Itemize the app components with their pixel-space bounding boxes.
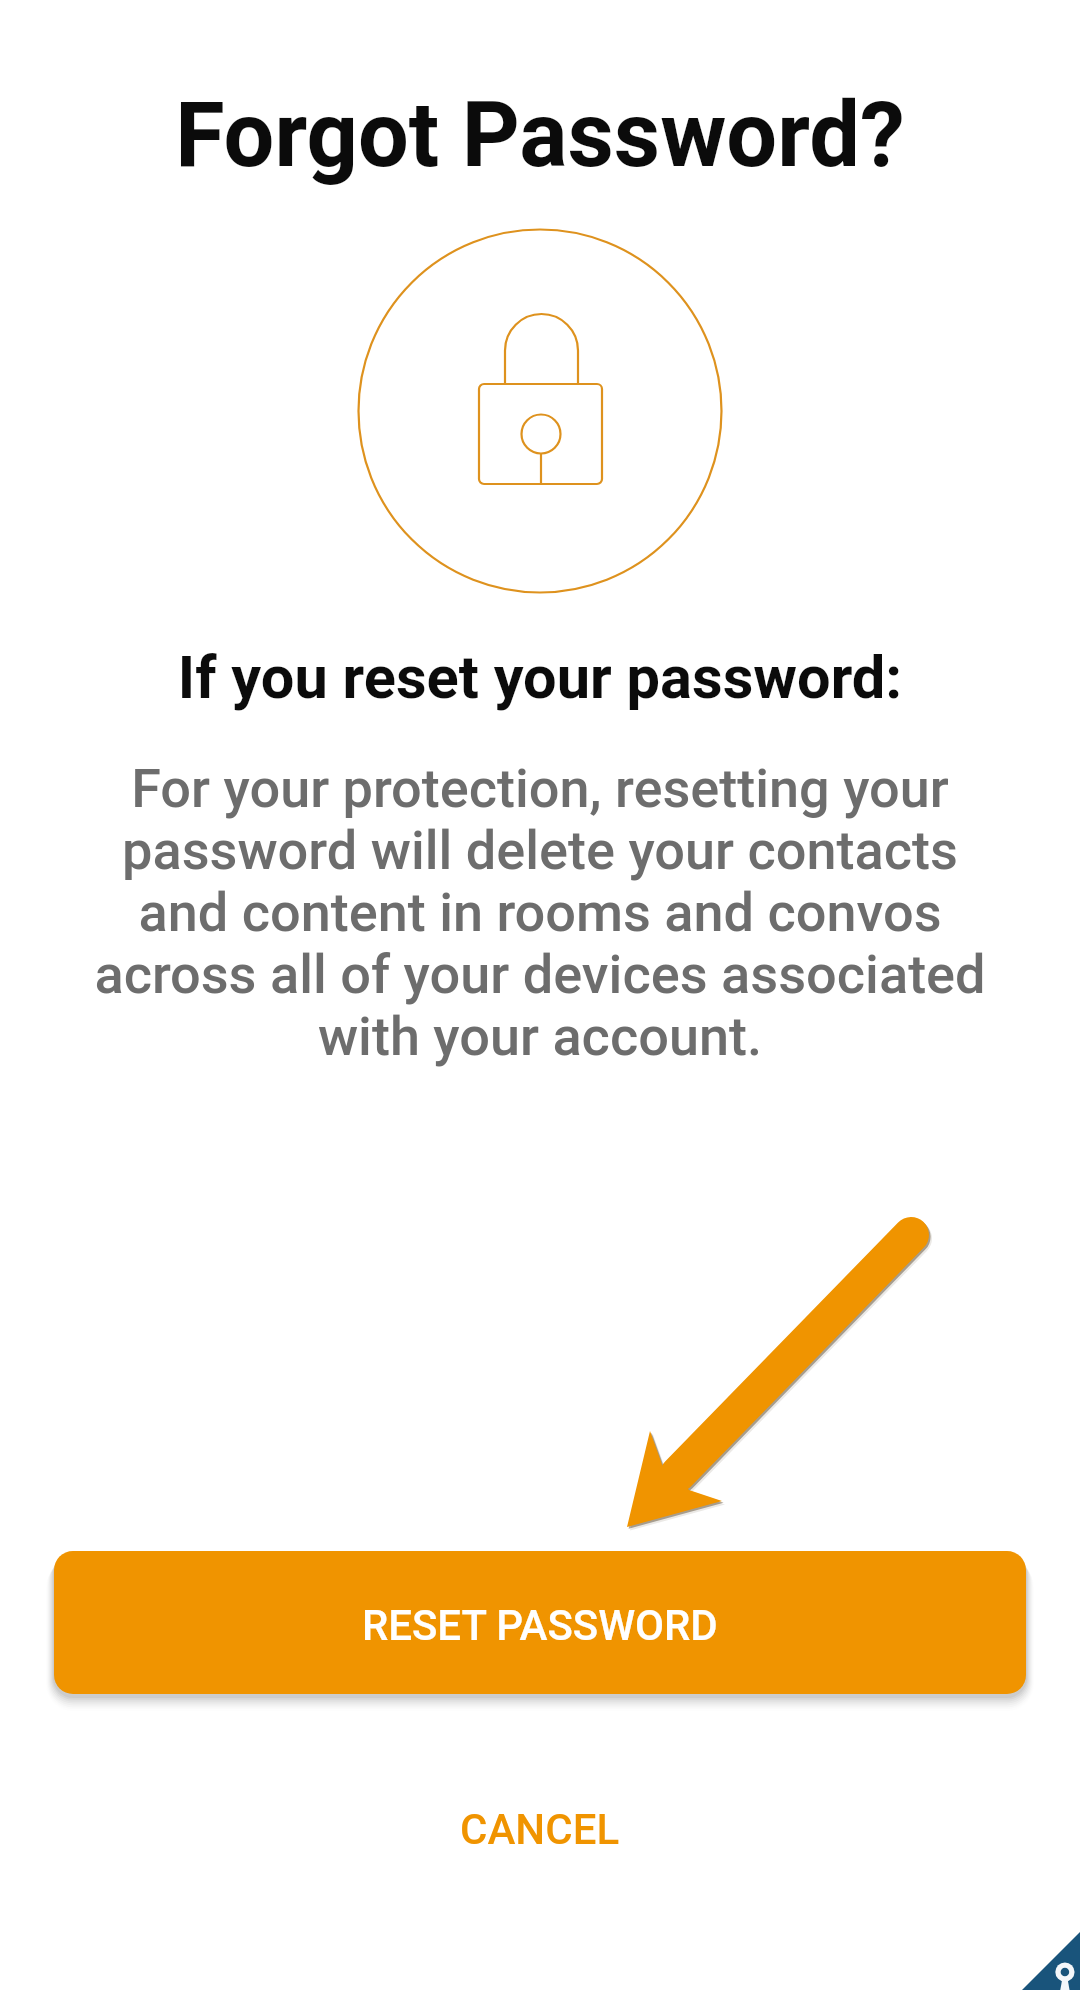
staticText: For your protection, resetting your pass… — [0, 757, 1080, 1068]
button[interactable]: CANCEL — [370, 1784, 710, 1874]
staticText: CANCEL — [460, 1805, 620, 1854]
button[interactable]: RESET PASSWORD — [54, 1551, 1026, 1694]
button[interactable]: Password manager — [1022, 1932, 1080, 1990]
staticText: RESET PASSWORD — [362, 1601, 718, 1650]
staticText: Forgot Password? — [0, 83, 1080, 188]
staticText: If you reset your password: — [0, 643, 1080, 713]
